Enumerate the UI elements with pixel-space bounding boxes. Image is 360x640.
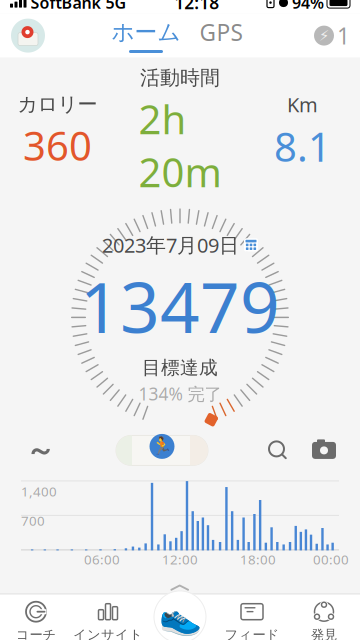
- staticText: 👟: [158, 597, 201, 637]
- staticText: 目標達成: [142, 356, 218, 379]
- button[interactable]: Map: [0, 16, 48, 56]
- staticText: 13479: [80, 260, 280, 352]
- staticText: 360: [23, 119, 92, 172]
- staticText: 00:00: [313, 550, 349, 568]
- staticText: 🏃: [151, 436, 173, 456]
- staticText: 134% 完了: [138, 382, 221, 405]
- staticText: 活動時間: [140, 66, 220, 90]
- staticText: 94%: [292, 0, 324, 13]
- button[interactable]: Start activity: [115, 431, 209, 469]
- staticText: 18:00: [240, 550, 276, 568]
- staticText: ホーム: [111, 18, 180, 46]
- staticText: GPS: [199, 17, 242, 47]
- staticText: ︿: [169, 571, 190, 597]
- staticText: 2h 20m: [138, 92, 221, 198]
- button[interactable]: ホーム: [106, 16, 186, 56]
- staticText: カロリー: [17, 92, 97, 117]
- button[interactable]: インサイト: [72, 596, 144, 640]
- staticText: フィード: [224, 627, 279, 640]
- button[interactable]: コーチ: [0, 596, 72, 640]
- button[interactable]: 発見: [288, 596, 360, 640]
- button[interactable]: Search: [256, 430, 300, 470]
- staticText: 1,400: [21, 482, 57, 500]
- button[interactable]: Streak: [314, 20, 360, 51]
- staticText: 700: [21, 512, 45, 529]
- staticText: 1: [337, 20, 350, 51]
- staticText: 12:18: [174, 0, 219, 14]
- staticText: 2023年7月09日: [102, 232, 239, 258]
- staticText: SoftBank: [30, 0, 100, 13]
- staticText: 8.1: [274, 120, 331, 173]
- staticText: ⚡︎: [319, 27, 329, 44]
- button[interactable]: フィード: [216, 596, 288, 640]
- button[interactable]: Camera: [300, 430, 348, 470]
- staticText: 発見: [311, 627, 337, 640]
- button[interactable]: GPS: [186, 16, 256, 56]
- button[interactable]: Expand: [150, 575, 210, 593]
- staticText: 06:00: [84, 550, 120, 568]
- staticText: コーチ: [15, 627, 56, 640]
- button[interactable]: Activity: [144, 591, 216, 640]
- staticText: 12:00: [162, 550, 198, 568]
- staticText: インサイト: [73, 627, 143, 640]
- staticText: ～: [25, 432, 54, 468]
- staticText: 5G: [105, 0, 126, 13]
- staticText: Km: [287, 91, 318, 118]
- button[interactable]: Route: [12, 430, 68, 470]
